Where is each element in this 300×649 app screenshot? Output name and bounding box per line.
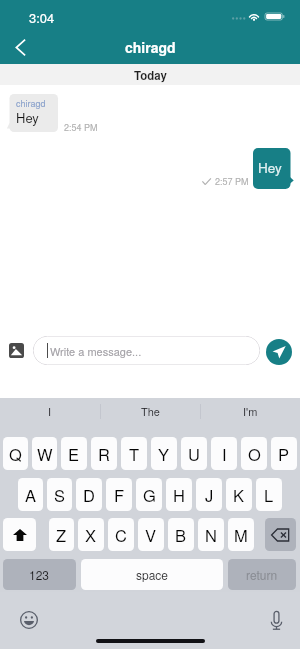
button[interactable]: C (108, 518, 134, 551)
button[interactable]: N (198, 518, 224, 551)
button[interactable]: Backspace (265, 518, 296, 551)
staticText: 3:04 (29, 8, 55, 27)
staticText: B (175, 523, 187, 547)
staticText: 2:57 PM (215, 175, 249, 188)
staticText: return (246, 566, 278, 583)
button[interactable]: Write a message... (33, 336, 260, 365)
button[interactable]: return (228, 559, 296, 590)
staticText: M (234, 523, 248, 547)
staticText: Z (56, 523, 67, 547)
staticText: Hey (258, 158, 282, 177)
button[interactable]: Dictate (268, 609, 284, 631)
staticText: X (85, 523, 97, 547)
staticText: 123 (29, 566, 50, 583)
button[interactable]: Back (4, 30, 36, 64)
button[interactable]: M (228, 518, 254, 551)
button[interactable]: P (271, 437, 297, 470)
staticText: Today (134, 67, 167, 83)
staticText: E (68, 442, 80, 466)
staticText: Write a message... (50, 343, 142, 359)
staticText: Y (158, 442, 170, 466)
staticText: chiragd (125, 37, 176, 57)
button[interactable]: L (256, 478, 282, 511)
button[interactable]: I'm (200, 398, 300, 424)
staticText: D (83, 483, 95, 507)
staticText: space (136, 566, 169, 583)
button[interactable]: A (18, 478, 43, 511)
button[interactable]: K (226, 478, 252, 511)
button[interactable]: I (211, 437, 237, 470)
button[interactable]: Y (151, 437, 177, 470)
staticText: S (54, 483, 66, 507)
staticText: R (98, 442, 110, 466)
button[interactable]: Z (49, 518, 74, 551)
button[interactable]: Shift (3, 518, 36, 551)
staticText: chiragd (16, 97, 46, 110)
staticText: 2:54 PM (64, 121, 98, 134)
staticText: T (129, 442, 140, 466)
staticText: N (205, 523, 217, 547)
button[interactable]: The (100, 398, 200, 424)
button[interactable]: T (121, 437, 147, 470)
staticText: L (264, 483, 274, 507)
button[interactable]: space (81, 559, 223, 590)
staticText: I (222, 442, 227, 466)
button[interactable]: H (166, 478, 192, 511)
button[interactable]: Q (3, 437, 28, 470)
staticText: W (37, 442, 53, 466)
button[interactable]: F (106, 478, 132, 511)
button[interactable]: U (181, 437, 207, 470)
staticText: U (188, 442, 200, 466)
staticText: C (115, 523, 127, 547)
staticText: P (278, 442, 290, 466)
button[interactable]: X (78, 518, 104, 551)
button[interactable]: D (76, 478, 102, 511)
staticText: I'm (243, 403, 258, 419)
button[interactable]: O (241, 437, 267, 470)
button[interactable]: 123 (3, 559, 76, 590)
button[interactable]: S (47, 478, 72, 511)
staticText: K (233, 483, 245, 507)
button[interactable]: Send (266, 339, 292, 365)
staticText: I (48, 403, 52, 419)
button[interactable]: W (32, 437, 57, 470)
staticText: F (114, 483, 125, 507)
button[interactable]: I (0, 398, 100, 424)
button[interactable]: Emoji (19, 610, 39, 630)
staticText: Q (9, 442, 22, 466)
button[interactable]: J (196, 478, 222, 511)
staticText: A (25, 483, 37, 507)
button[interactable]: B (168, 518, 194, 551)
button[interactable]: G (136, 478, 162, 511)
button[interactable]: E (61, 437, 87, 470)
button[interactable]: R (91, 437, 117, 470)
staticText: O (248, 442, 261, 466)
staticText: H (173, 483, 185, 507)
staticText: The (141, 403, 160, 419)
button[interactable]: Attach image (9, 343, 24, 358)
staticText: V (145, 523, 157, 547)
staticText: Hey (16, 108, 39, 127)
staticText: J (205, 483, 214, 507)
button[interactable] (6, 94, 58, 132)
button[interactable]: V (138, 518, 164, 551)
staticText: G (143, 483, 156, 507)
button[interactable] (253, 148, 291, 189)
